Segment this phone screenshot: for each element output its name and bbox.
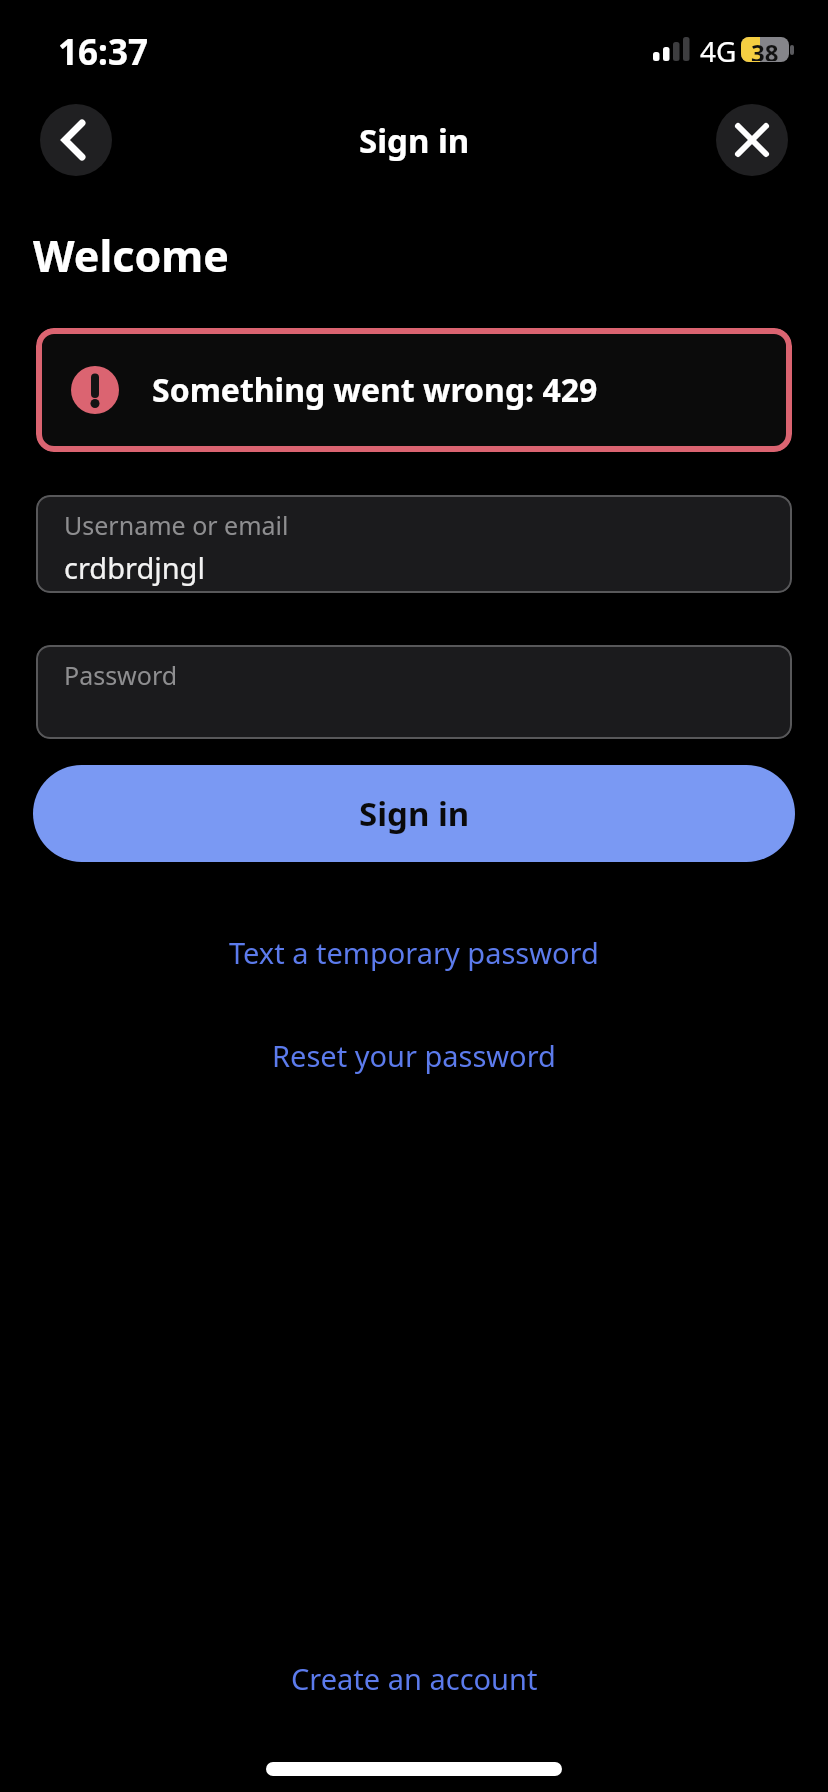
staticText: Sign in [359, 791, 470, 836]
button[interactable]: Password [36, 645, 792, 739]
staticText: Password [64, 658, 178, 692]
button[interactable] [40, 104, 112, 176]
staticText: Username or email [64, 508, 289, 542]
button[interactable]: Create an account [291, 1659, 538, 1698]
button[interactable]: Text a temporary password [229, 933, 599, 972]
staticText: Welcome [33, 226, 229, 285]
button[interactable]: Username or email [36, 495, 792, 593]
staticText: 38 [751, 37, 779, 61]
button[interactable]: Sign in [33, 765, 795, 862]
staticText: 4G [700, 32, 737, 70]
button[interactable] [716, 104, 788, 176]
staticText: Something went wrong: 429 [152, 368, 598, 412]
button[interactable]: Reset your password [272, 1036, 556, 1075]
staticText: Sign in [359, 118, 470, 163]
staticText: 16:37 [58, 28, 148, 76]
staticText: crdbrdjngl [64, 548, 205, 587]
